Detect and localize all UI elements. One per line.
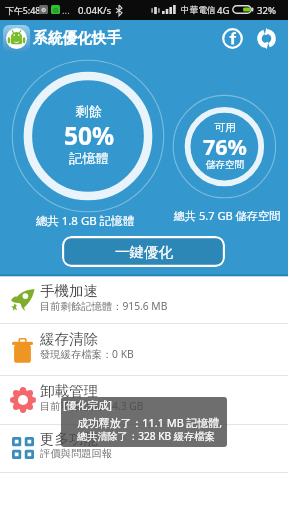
staticText: 更多功能 xyxy=(40,430,98,448)
button[interactable]: 一鍵優化 xyxy=(62,236,225,267)
staticText: 76% xyxy=(185,132,265,161)
staticText: ⚙ xyxy=(41,6,47,13)
staticText: 目前可用空間：4.3 GB xyxy=(40,399,144,413)
staticText: 儲存空間 xyxy=(185,159,265,171)
staticText: 可用 xyxy=(185,121,265,135)
staticText: ... xyxy=(62,4,70,17)
staticText: 發現緩存檔案：0 KB xyxy=(40,347,134,361)
staticText: 中華電信 xyxy=(181,5,216,16)
staticText: 評價與問題回報 xyxy=(40,447,113,460)
button[interactable]: Facebook xyxy=(218,24,247,53)
staticText: 0.04K/s xyxy=(78,4,112,17)
staticText: 總共 5.7 GB 儲存空間 xyxy=(162,208,288,223)
staticText: ◎ xyxy=(53,6,59,13)
staticText: 目前剩餘記憶體：915.6 MB xyxy=(40,299,168,313)
staticText: 總共 1.8 GB 記憶體 xyxy=(0,213,175,229)
staticText: 下午5:48 xyxy=(5,4,41,16)
button[interactable]: 緩存清除 xyxy=(0,324,288,376)
staticText: 卸載管理 xyxy=(40,382,98,400)
staticText: 系統優化快手 xyxy=(33,29,122,48)
staticText: 記憶體 xyxy=(39,150,139,167)
button[interactable]: 手機加速 xyxy=(0,276,288,324)
staticText: 4G xyxy=(217,4,230,17)
staticText: 手機加速 xyxy=(40,282,98,300)
staticText: [優化完成] xyxy=(63,398,112,412)
button[interactable]: Refresh xyxy=(252,24,281,53)
button[interactable]: 卸載管理 xyxy=(0,376,288,425)
staticText: 成功釋放了：11.1 MB 記憶體, xyxy=(77,415,223,430)
button[interactable]: App icon xyxy=(3,25,30,52)
button[interactable]: 更多功能 xyxy=(0,424,288,473)
staticText: 32% xyxy=(257,4,276,17)
staticText: 50% xyxy=(39,119,139,152)
staticText: 緩存清除 xyxy=(40,330,98,348)
staticText: 一鍵優化 xyxy=(115,243,173,261)
staticText: 剩餘 xyxy=(39,103,139,120)
staticText: 總共清除了：328 KB 緩存檔案 xyxy=(77,429,215,443)
